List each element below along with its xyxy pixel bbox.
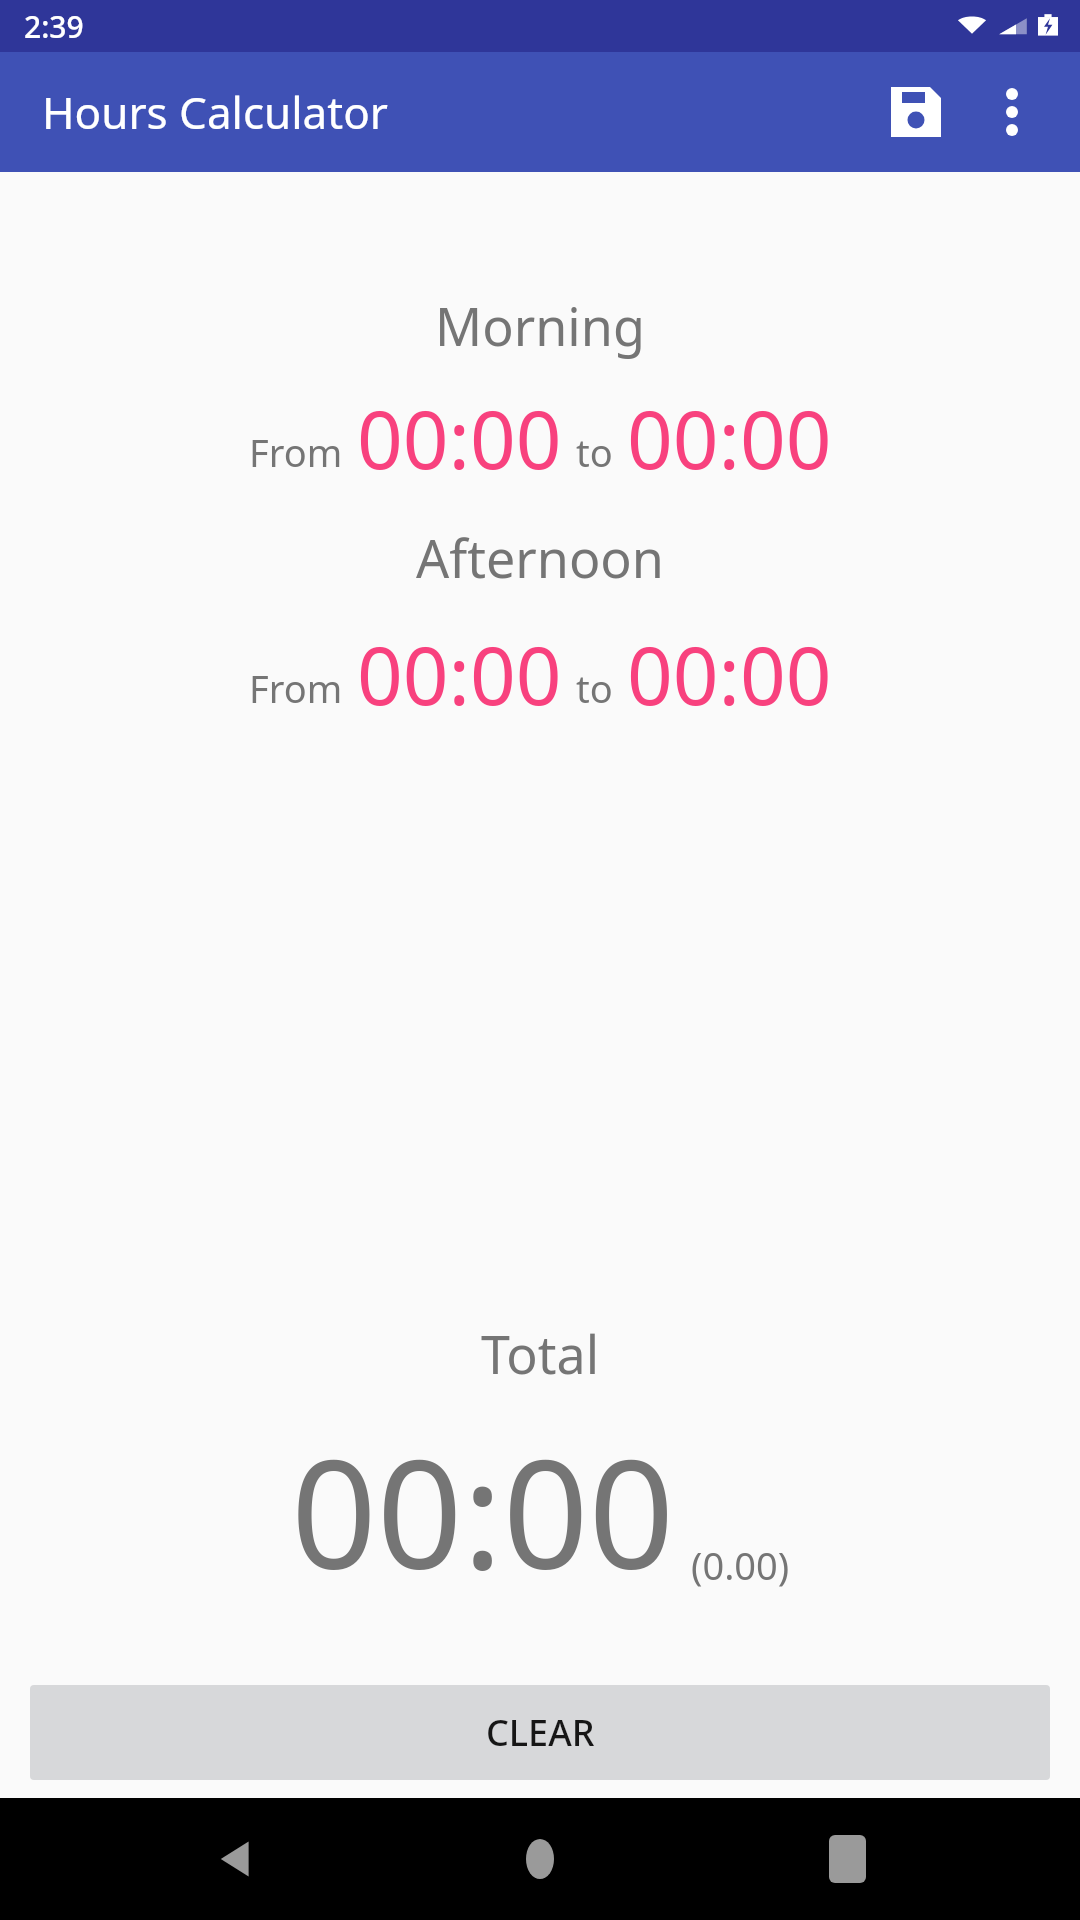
staticText: 00:00 bbox=[627, 619, 832, 728]
button[interactable]: 00:00 bbox=[627, 383, 832, 492]
button[interactable]: More options bbox=[964, 64, 1060, 160]
staticText: to bbox=[576, 662, 613, 714]
staticText: Hours Calculator bbox=[42, 82, 388, 142]
staticText: Morning bbox=[0, 290, 1080, 361]
staticText: Total bbox=[0, 1318, 1080, 1389]
staticText: 2:39 bbox=[24, 6, 84, 47]
staticText: to bbox=[576, 426, 613, 478]
button[interactable]: 00:00 bbox=[357, 619, 562, 728]
staticText: Afternoon bbox=[0, 522, 1080, 593]
staticText: 00:00 bbox=[357, 383, 562, 492]
staticText: From bbox=[249, 426, 343, 478]
button[interactable]: 00:00 bbox=[627, 619, 832, 728]
staticText: 00:00 bbox=[627, 383, 832, 492]
button[interactable]: 00:00 bbox=[357, 383, 562, 492]
button[interactable]: Recents bbox=[822, 1834, 872, 1884]
staticText: CLEAR bbox=[486, 1708, 595, 1757]
button[interactable]: Home bbox=[515, 1834, 565, 1884]
button[interactable]: Back bbox=[208, 1830, 266, 1888]
staticText: 00:00 bbox=[357, 619, 562, 728]
staticText: (0.00) bbox=[691, 1539, 790, 1591]
staticText: 00:00 bbox=[291, 1409, 675, 1613]
button[interactable]: Save bbox=[868, 64, 964, 160]
button[interactable]: CLEAR bbox=[30, 1685, 1050, 1780]
staticText: From bbox=[249, 662, 343, 714]
